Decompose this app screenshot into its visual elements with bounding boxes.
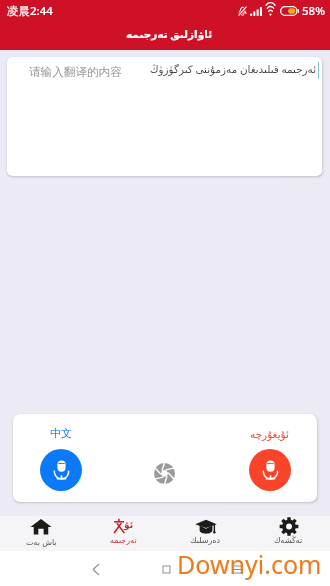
staticText: 凌晨2:44 — [7, 3, 53, 19]
button[interactable]: دەرسلىك — [164, 516, 247, 551]
staticText: 58% — [302, 3, 325, 19]
staticText: ئۇ — [124, 520, 134, 530]
staticText: 中文 — [50, 426, 72, 440]
staticText: Downyi.com — [177, 547, 322, 581]
staticText: ئۇيغۇرچە — [250, 428, 289, 440]
staticText: تەرجىمە — [110, 536, 137, 545]
button[interactable]: 请输入翻译的内容 — [7, 57, 322, 176]
staticText: تەڭشەك — [274, 536, 303, 545]
button[interactable]: Recents — [226, 559, 246, 579]
staticText: باش بەت — [26, 536, 57, 547]
button[interactable]: Camera translate — [148, 457, 180, 489]
button[interactable]: ئۇيغۇرچە — [235, 428, 304, 491]
button[interactable]: باش بەت — [0, 516, 82, 551]
staticText: دەرسلىك — [190, 536, 221, 545]
button[interactable]: 中文 — [26, 426, 95, 491]
staticText: ئاۋازلىق تەرجىمە — [126, 27, 213, 41]
button[interactable]: تەڭشەك — [247, 516, 330, 551]
staticText: 请输入翻译的内容 — [29, 65, 122, 80]
button[interactable]: Home — [156, 559, 176, 579]
button[interactable]: ئۇ — [82, 516, 164, 551]
button[interactable]: Back — [86, 559, 106, 579]
staticText: ئەرجىمە قىلىدىغان مەزمۇننى كىرگۈزۈڭ — [150, 62, 317, 76]
